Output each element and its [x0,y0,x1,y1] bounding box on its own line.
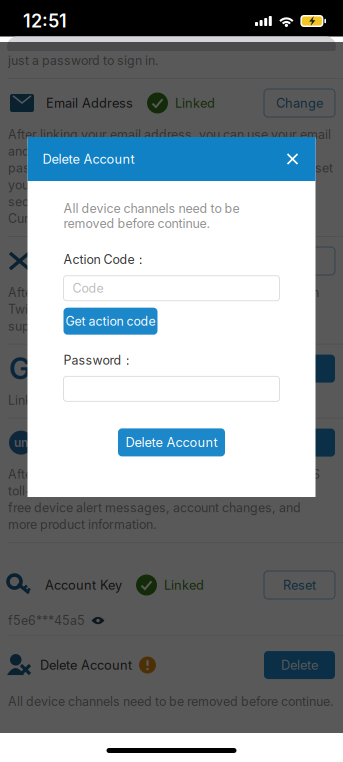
button[interactable]: Reset [264,571,335,599]
button[interactable]: Twitter [0,237,343,285]
staticText: 12:51 [23,10,67,32]
staticText: After linking your Twitter account, you … [8,285,319,334]
staticText: Reset [283,577,316,593]
button[interactable]: un [0,419,343,467]
staticText: Delete [281,657,318,673]
staticText: just a password to sign in. [8,53,159,68]
button[interactable]: Close [280,147,304,171]
staticText: Delete Account [40,657,132,673]
button[interactable]: Delete Account [118,428,225,456]
staticText: Linked [164,577,204,593]
staticText: f5e6***45a5 [8,613,85,628]
button[interactable]: Change [264,89,335,117]
staticText: un [14,435,28,450]
staticText: After linking your email address, you ca… [8,127,333,226]
staticText: All device channels need to be removed b… [8,694,334,709]
staticText: Account Key [45,577,122,593]
staticText: Get action code [65,314,155,329]
staticText: After linking your phone number, you can… [8,467,320,532]
staticText: Twitter [44,253,84,269]
button[interactable]: G [0,345,343,393]
button[interactable]: Link [264,355,335,383]
staticText: Email Address [46,95,133,111]
button[interactable]: Link [264,247,335,275]
staticText: Link your Google account to sign in quic… [8,393,257,408]
staticText: Delete Account [125,435,217,450]
button[interactable]: Email Address [0,79,343,127]
button[interactable]: Link [264,429,335,457]
staticText: G [9,351,31,386]
staticText: Linked [175,95,215,111]
button[interactable]: Get action code [63,308,157,335]
button[interactable]: Delete Account [0,636,343,694]
staticText: Password： [63,353,133,368]
staticText: Code [72,281,103,296]
staticText: All device channels need to be removed b… [63,201,239,231]
staticText: Delete Account [42,151,134,167]
staticText: Action Code： [63,252,146,268]
staticText: Google [46,361,90,376]
staticText: Change [276,95,323,111]
button[interactable]: Account Key [0,557,343,613]
button[interactable]: Delete [264,651,335,679]
